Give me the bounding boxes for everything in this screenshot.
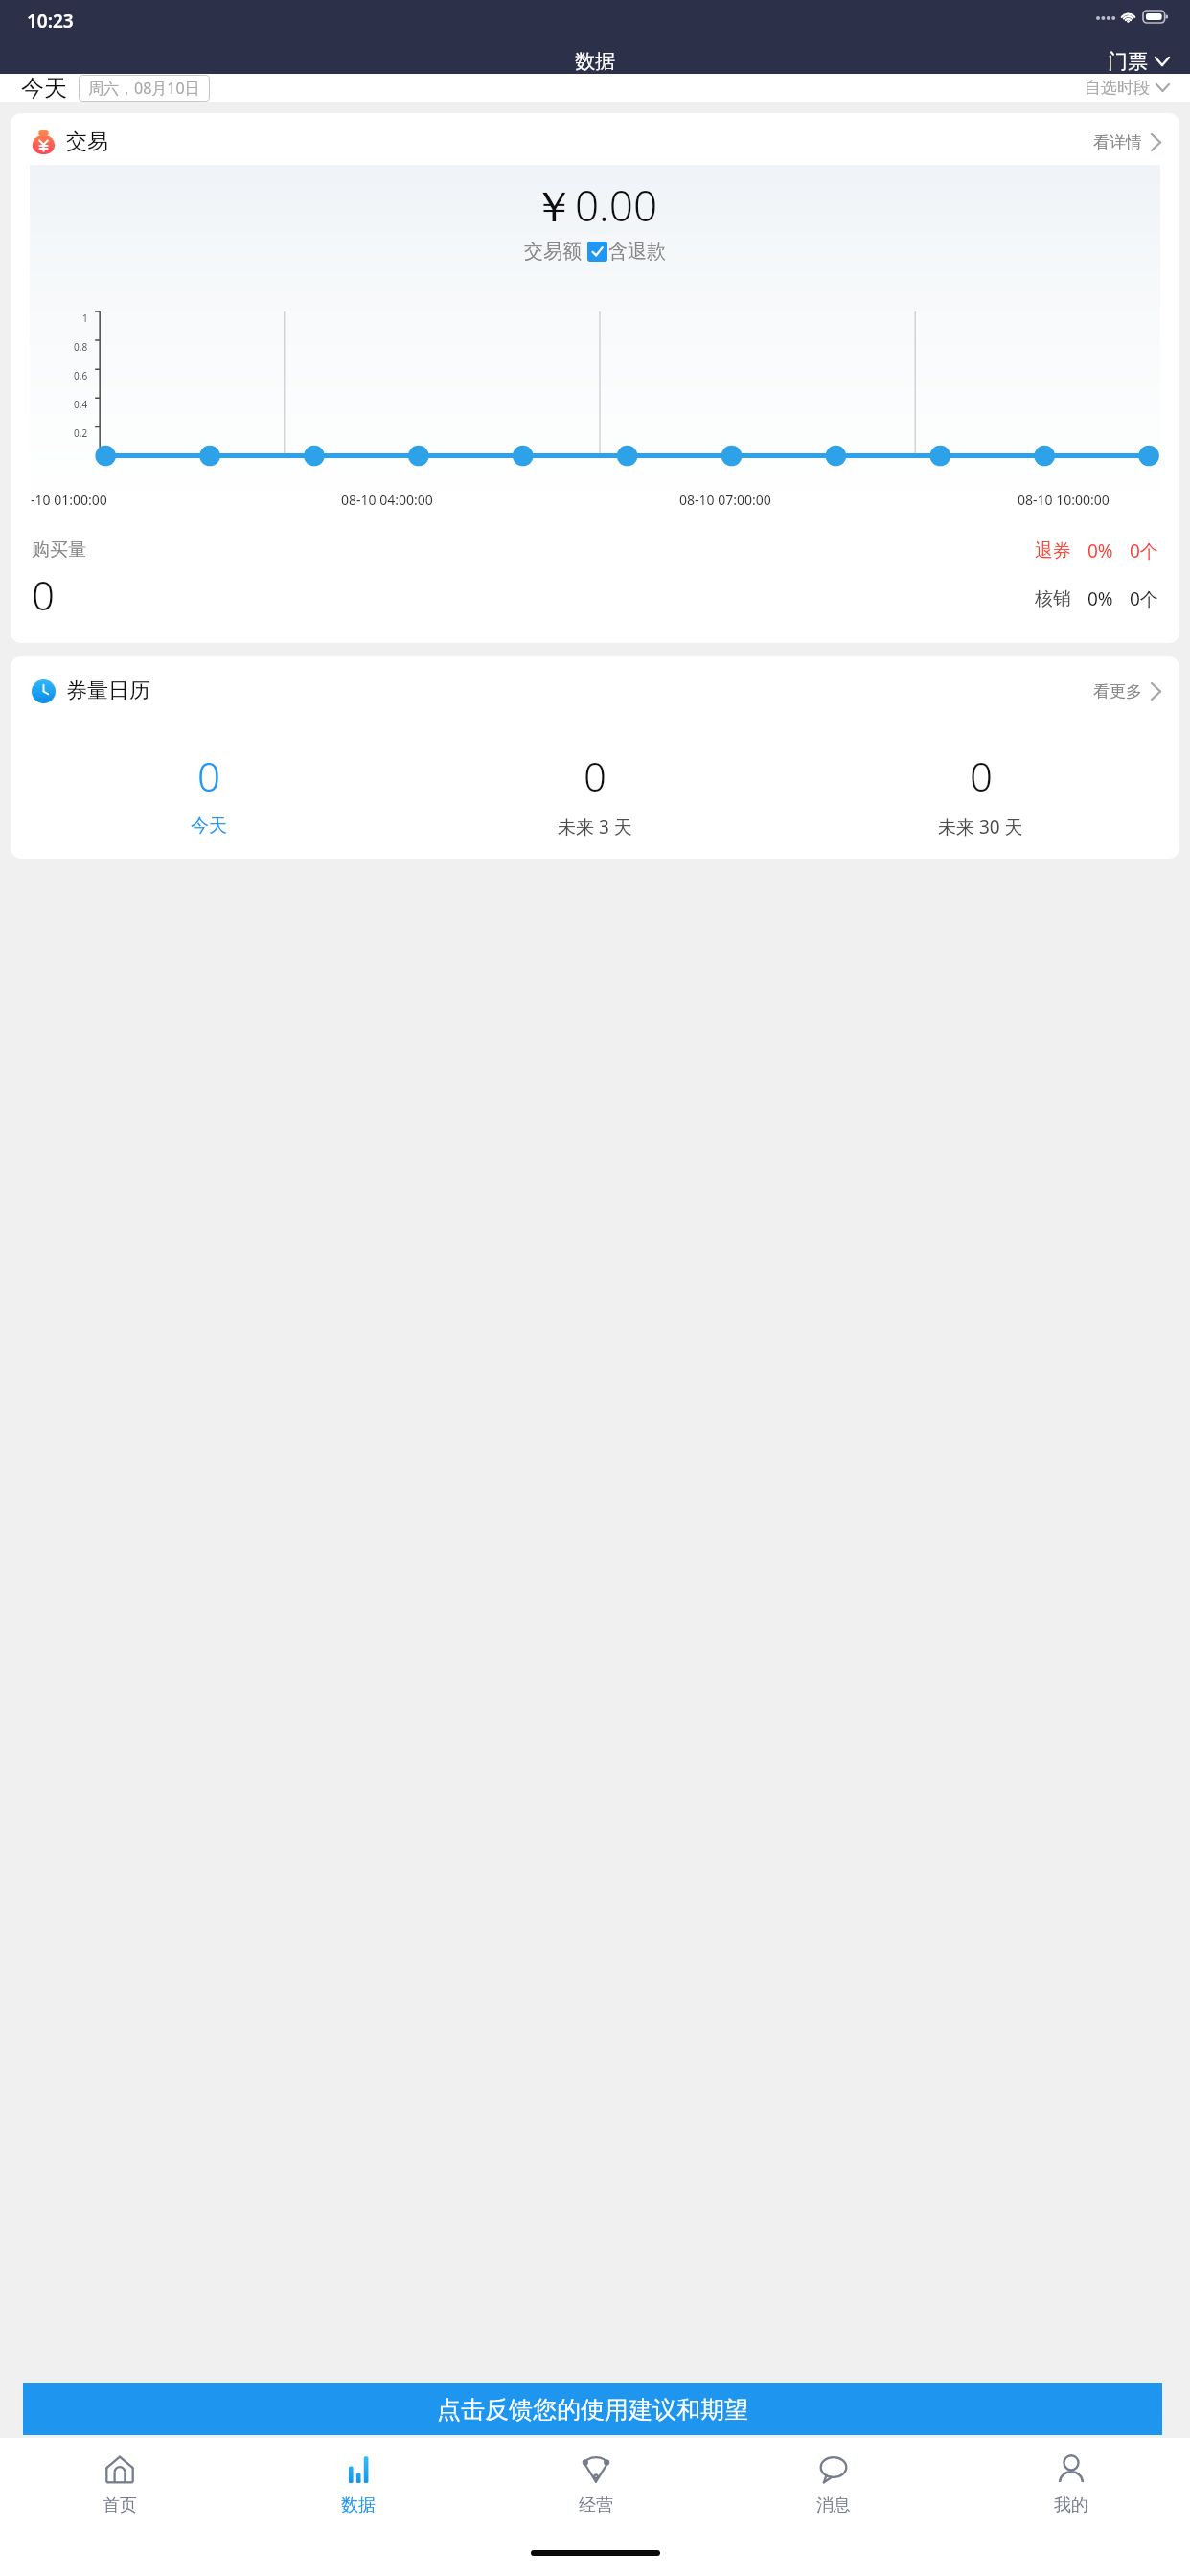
staticText: 0% xyxy=(1087,586,1113,611)
button[interactable]: 看详情 xyxy=(1093,132,1160,152)
button[interactable]: 自选时段 xyxy=(1085,78,1169,98)
staticText: 未来 3 天 xyxy=(558,815,632,839)
staticText: 自选时段 xyxy=(1085,78,1150,98)
button[interactable]: 门票 xyxy=(1108,49,1169,74)
staticText: ￥0.00 xyxy=(30,176,1160,234)
staticText: 0个 xyxy=(1130,539,1158,563)
staticText: 今天 xyxy=(21,74,67,102)
staticText: 核销 xyxy=(1035,587,1071,610)
button[interactable]: 交易 xyxy=(11,113,1179,643)
button[interactable]: 数据 xyxy=(239,2438,477,2530)
staticText: 数据 xyxy=(575,49,615,74)
staticText: 交易额 xyxy=(524,240,582,264)
staticText: 0.8 xyxy=(74,340,88,354)
staticText: 周六，08月10日 xyxy=(88,78,200,99)
button[interactable]: 看更多 xyxy=(1093,681,1160,701)
staticText: 看更多 xyxy=(1093,681,1142,701)
staticText: 数据 xyxy=(341,2495,376,2517)
button[interactable]: 点击反馈您的使用建议和期望 xyxy=(23,2383,1162,2435)
staticText: 0 xyxy=(970,748,993,803)
staticText: 含退款 xyxy=(608,240,666,264)
staticText: 今天 xyxy=(191,815,227,838)
staticText: 我的 xyxy=(1054,2495,1088,2517)
staticText: 0% xyxy=(1087,539,1113,563)
staticText: 经营 xyxy=(579,2495,613,2517)
staticText: 券量日历 xyxy=(66,678,150,704)
staticText: 交易 xyxy=(66,128,108,155)
staticText: 0 xyxy=(197,748,220,803)
staticText: 0.2 xyxy=(74,426,88,440)
staticText: 看详情 xyxy=(1093,132,1142,152)
button[interactable]: 首页 xyxy=(0,2438,239,2530)
button[interactable]: 周六，08月10日 xyxy=(88,78,200,99)
button[interactable]: 经营 xyxy=(477,2438,715,2530)
staticText: 08-10 04:00:00 xyxy=(341,491,433,509)
staticText: 点击反馈您的使用建议和期望 xyxy=(437,2395,748,2425)
staticText: 未来 30 天 xyxy=(938,815,1023,839)
button[interactable]: 我的 xyxy=(952,2438,1190,2530)
staticText: 0.4 xyxy=(74,398,88,411)
staticText: 1 xyxy=(82,311,88,325)
staticText: 0 xyxy=(32,567,55,622)
button[interactable]: 券量日历 xyxy=(11,656,1179,859)
staticText: 08-10 10:00:00 xyxy=(1018,491,1110,509)
staticText: 0个 xyxy=(1130,586,1158,611)
staticText: -10 01:00:00 xyxy=(31,491,107,509)
staticText: 门票 xyxy=(1108,49,1148,74)
staticText: 08-10 07:00:00 xyxy=(679,491,771,509)
staticText: 首页 xyxy=(103,2495,137,2517)
staticText: 0.6 xyxy=(74,369,88,382)
staticText: 消息 xyxy=(816,2495,851,2517)
staticText: 10:23 xyxy=(27,9,74,34)
button[interactable]: 消息 xyxy=(715,2438,952,2530)
button[interactable]: 含退款 xyxy=(587,241,607,262)
staticText: 购买量 xyxy=(32,539,86,562)
staticText: 0 xyxy=(584,748,606,803)
staticText: 退券 xyxy=(1035,540,1071,563)
